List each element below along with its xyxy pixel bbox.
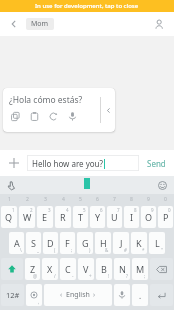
button[interactable]: Enter <box>150 284 173 306</box>
button[interactable]: Back <box>7 17 21 31</box>
staticText: N <box>119 263 126 275</box>
staticText: 0 <box>168 207 171 213</box>
button[interactable]: Z <box>25 258 40 280</box>
staticText: A <box>14 237 20 249</box>
button[interactable]: Send <box>145 158 168 169</box>
staticText: Y <box>95 211 101 223</box>
staticText: . <box>139 290 142 301</box>
button[interactable]: U <box>107 206 122 228</box>
staticText: ) <box>89 247 91 253</box>
staticText: V <box>83 263 89 275</box>
button[interactable]: I <box>124 206 139 228</box>
button[interactable]: P <box>158 206 173 228</box>
staticText: 0 <box>164 196 167 203</box>
button[interactable]: In use for development, tap to close <box>0 0 174 12</box>
button[interactable]: Voice input <box>114 284 130 306</box>
button[interactable]: S <box>26 232 41 254</box>
staticText: & <box>105 247 109 253</box>
button[interactable]: Mom <box>26 18 54 30</box>
button[interactable]: M <box>132 258 148 280</box>
staticText: " <box>161 247 163 253</box>
staticText: + <box>89 273 92 279</box>
button[interactable]: K <box>131 232 147 254</box>
staticText: Send <box>147 158 166 169</box>
staticText: ( <box>54 247 56 253</box>
staticText: 12# <box>6 290 20 300</box>
staticText: E <box>42 211 48 223</box>
staticText: 5 <box>83 207 86 213</box>
staticText: , <box>38 299 40 305</box>
button[interactable]: Translate <box>47 110 59 122</box>
staticText: 9 <box>151 207 154 213</box>
staticText: 8 <box>130 196 133 203</box>
staticText: ; <box>71 247 73 253</box>
button[interactable]: ‹ <box>44 284 112 306</box>
button[interactable]: Add attachment <box>6 155 22 171</box>
button[interactable]: Paste <box>28 110 40 122</box>
staticText: ? <box>126 273 128 279</box>
staticText: # <box>124 247 127 253</box>
button[interactable]: X <box>42 258 58 280</box>
button[interactable]: W <box>19 206 35 228</box>
staticText: Z <box>30 263 36 275</box>
staticText: O <box>145 211 153 223</box>
button[interactable]: Handwriting <box>5 178 19 192</box>
staticText: 3 <box>44 196 47 203</box>
button[interactable]: Copy <box>9 110 21 122</box>
staticText: T <box>78 211 84 223</box>
button[interactable]: N <box>114 258 130 280</box>
button[interactable]: L <box>149 232 165 254</box>
button[interactable]: More <box>101 88 115 132</box>
staticText: * <box>142 247 145 253</box>
button[interactable]: Q <box>1 206 17 228</box>
button[interactable]: Hello how are you? <box>27 155 139 171</box>
staticText: 9 <box>147 196 150 203</box>
button[interactable]: T <box>73 206 88 228</box>
button[interactable]: . <box>132 284 148 306</box>
button[interactable]: Backspace <box>150 258 173 280</box>
button[interactable]: O <box>141 206 156 228</box>
staticText: P <box>163 211 169 223</box>
staticText: I <box>130 211 134 223</box>
staticText: L <box>155 237 160 249</box>
staticText: @ <box>33 273 38 279</box>
staticText: M <box>136 263 145 275</box>
staticText: U <box>111 211 118 223</box>
button[interactable]: Emoji <box>155 178 169 192</box>
staticText: ; <box>144 273 146 279</box>
button[interactable]: B <box>96 258 112 280</box>
button[interactable]: V <box>78 258 94 280</box>
button[interactable]: R <box>55 206 71 228</box>
button[interactable]: H <box>95 232 111 254</box>
staticText: R <box>60 211 66 223</box>
button[interactable]: J <box>113 232 129 254</box>
button[interactable]: 12# <box>1 284 24 306</box>
button[interactable]: Shift <box>1 258 23 280</box>
staticText: J <box>120 237 123 249</box>
staticText: / <box>54 273 56 279</box>
button[interactable]: D <box>43 232 58 254</box>
button[interactable]: Voice input <box>66 110 78 122</box>
button[interactable]: G <box>77 232 93 254</box>
staticText: - <box>72 273 74 279</box>
staticText: English <box>66 290 90 300</box>
staticText: 4 <box>66 207 69 213</box>
staticText: ‹ <box>60 290 63 300</box>
button[interactable]: C <box>60 258 76 280</box>
staticText: 8 <box>134 207 137 213</box>
staticText: F <box>65 237 70 249</box>
staticText: S <box>31 237 36 249</box>
button[interactable]: Settings <box>26 284 42 306</box>
button[interactable]: Y <box>90 206 105 228</box>
button[interactable]: Contact details <box>151 16 167 32</box>
staticText: B <box>101 263 107 275</box>
staticText: Mom <box>31 19 49 29</box>
button[interactable]: A <box>9 232 24 254</box>
staticText: 6 <box>100 207 103 213</box>
button[interactable]: E <box>37 206 53 228</box>
staticText: Hello how are you? <box>32 158 104 169</box>
button[interactable]: F <box>60 232 75 254</box>
button[interactable]: ¿Hola cómo estás? <box>3 88 115 132</box>
staticText: 1 <box>8 196 11 203</box>
staticText: In use for development, tap to close <box>35 2 139 10</box>
